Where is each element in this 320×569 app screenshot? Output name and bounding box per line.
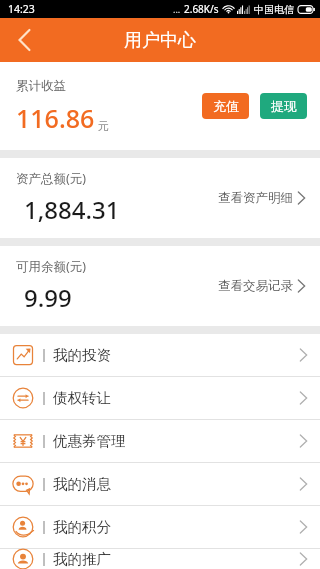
staticText: 用户中心 <box>124 29 196 52</box>
button[interactable]: 债权转让 <box>0 377 320 419</box>
button[interactable]: 查看交易记录 <box>214 272 310 300</box>
staticText: 累计收益 <box>16 78 66 94</box>
button[interactable]: 我的消息 <box>0 463 320 505</box>
staticText: ... <box>173 3 181 15</box>
staticText: 提现 <box>271 98 297 114</box>
staticText: 查看资产明细 <box>218 190 293 206</box>
button[interactable]: 优惠券管理 <box>0 420 320 462</box>
staticText: 我的推广 <box>53 550 111 568</box>
staticText: 9.99 <box>24 281 72 314</box>
button[interactable]: 充值 <box>202 93 249 119</box>
staticText: 我的投资 <box>53 346 111 364</box>
staticText: 中国电信 <box>254 3 294 16</box>
button[interactable]: Back <box>0 18 48 62</box>
staticText: 116.86 <box>16 101 95 135</box>
staticText: 1,884.31 <box>24 193 120 226</box>
button[interactable]: 提现 <box>260 93 307 119</box>
staticText: 元 <box>98 119 109 133</box>
button[interactable]: 我的投资 <box>0 334 320 376</box>
button[interactable]: 查看资产明细 <box>214 184 310 212</box>
staticText: 我的消息 <box>53 475 111 493</box>
staticText: 我的积分 <box>53 518 111 536</box>
button[interactable]: 我的推广 <box>0 549 320 569</box>
staticText: 查看交易记录 <box>218 278 293 294</box>
staticText: 14:23 <box>8 2 35 16</box>
staticText: 充值 <box>213 98 239 114</box>
staticText: 债权转让 <box>53 389 111 407</box>
staticText: 可用余额(元) <box>16 258 87 275</box>
button[interactable]: 我的积分 <box>0 506 320 548</box>
staticText: 优惠券管理 <box>53 432 126 450</box>
staticText: 2.68K/s <box>184 2 219 16</box>
staticText: 资产总额(元) <box>16 170 87 187</box>
